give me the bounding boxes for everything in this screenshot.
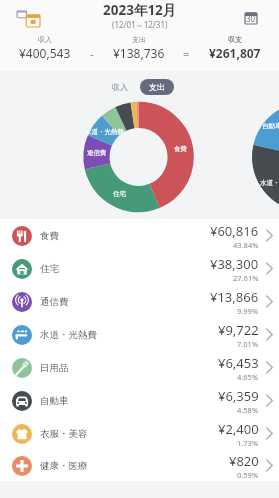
staticText: 健康・医療 xyxy=(40,460,88,472)
staticText: 収支 xyxy=(228,35,242,44)
staticText: 0.59% xyxy=(237,470,259,480)
staticText: 通信費 xyxy=(87,149,107,157)
staticText: ¥820 xyxy=(229,452,259,470)
staticText: 支出 xyxy=(132,35,146,44)
staticText: ¥6,453 xyxy=(218,354,259,372)
staticText: 4.58% xyxy=(237,405,259,415)
button[interactable]: Select month xyxy=(14,7,40,32)
staticText: 衣服・美容 xyxy=(40,428,88,440)
staticText: 住宅 xyxy=(40,263,59,275)
staticText: 通信費 xyxy=(40,296,69,308)
staticText: 収入 xyxy=(112,82,128,92)
staticText: ¥2,400 xyxy=(218,420,259,438)
button[interactable]: 住宅 xyxy=(0,252,279,285)
staticText: 自動車 xyxy=(262,122,279,130)
staticText: 30 xyxy=(246,13,256,24)
staticText: ¥38,300 xyxy=(210,255,259,273)
staticText: 2023年12月 xyxy=(103,1,177,19)
staticText: 27.61% xyxy=(233,273,259,283)
button[interactable]: 健康・医療 xyxy=(0,450,279,481)
staticText: 自動車 xyxy=(40,395,69,407)
button[interactable]: 収入 xyxy=(109,79,131,95)
staticText: 収入 xyxy=(38,35,52,44)
staticText: 水道・光熱費 xyxy=(40,329,97,341)
staticText: ¥6,359 xyxy=(218,387,259,405)
button[interactable]: 通信費 xyxy=(0,285,279,318)
staticText: 水道・光熱費 xyxy=(260,179,279,187)
button[interactable]: 支出 xyxy=(140,79,174,95)
staticText: 1.73% xyxy=(237,438,259,448)
button[interactable]: 食費 xyxy=(0,219,279,252)
staticText: 4.65% xyxy=(237,372,259,382)
staticText: ¥400,543 xyxy=(19,45,71,61)
staticText: ¥261,807 xyxy=(209,45,261,61)
staticText: 支出 xyxy=(149,82,165,92)
staticText: (12/01～12/31) xyxy=(112,19,168,30)
staticText: 食費 xyxy=(40,230,59,242)
staticText: ¥138,736 xyxy=(113,45,165,61)
button[interactable]: 自動車 xyxy=(0,384,279,417)
staticText: 住宅 xyxy=(113,190,126,198)
staticText: ¥60,816 xyxy=(210,222,259,240)
staticText: 9.99% xyxy=(237,306,259,316)
staticText: 日用品 xyxy=(40,362,69,374)
staticText: ¥9,722 xyxy=(218,321,259,339)
button[interactable]: 日用品 xyxy=(0,351,279,384)
staticText: 7.01% xyxy=(237,339,259,349)
staticText: - xyxy=(90,46,94,61)
staticText: 水道・光熱費 xyxy=(85,128,124,136)
button[interactable]: 衣服・美容 xyxy=(0,417,279,450)
button[interactable]: Calendar xyxy=(239,8,263,32)
staticText: 43.84% xyxy=(233,240,259,250)
button[interactable]: 水道・光熱費 xyxy=(0,318,279,351)
staticText: ¥13,866 xyxy=(210,288,259,306)
staticText: = xyxy=(183,46,190,61)
staticText: 食費 xyxy=(174,145,187,153)
